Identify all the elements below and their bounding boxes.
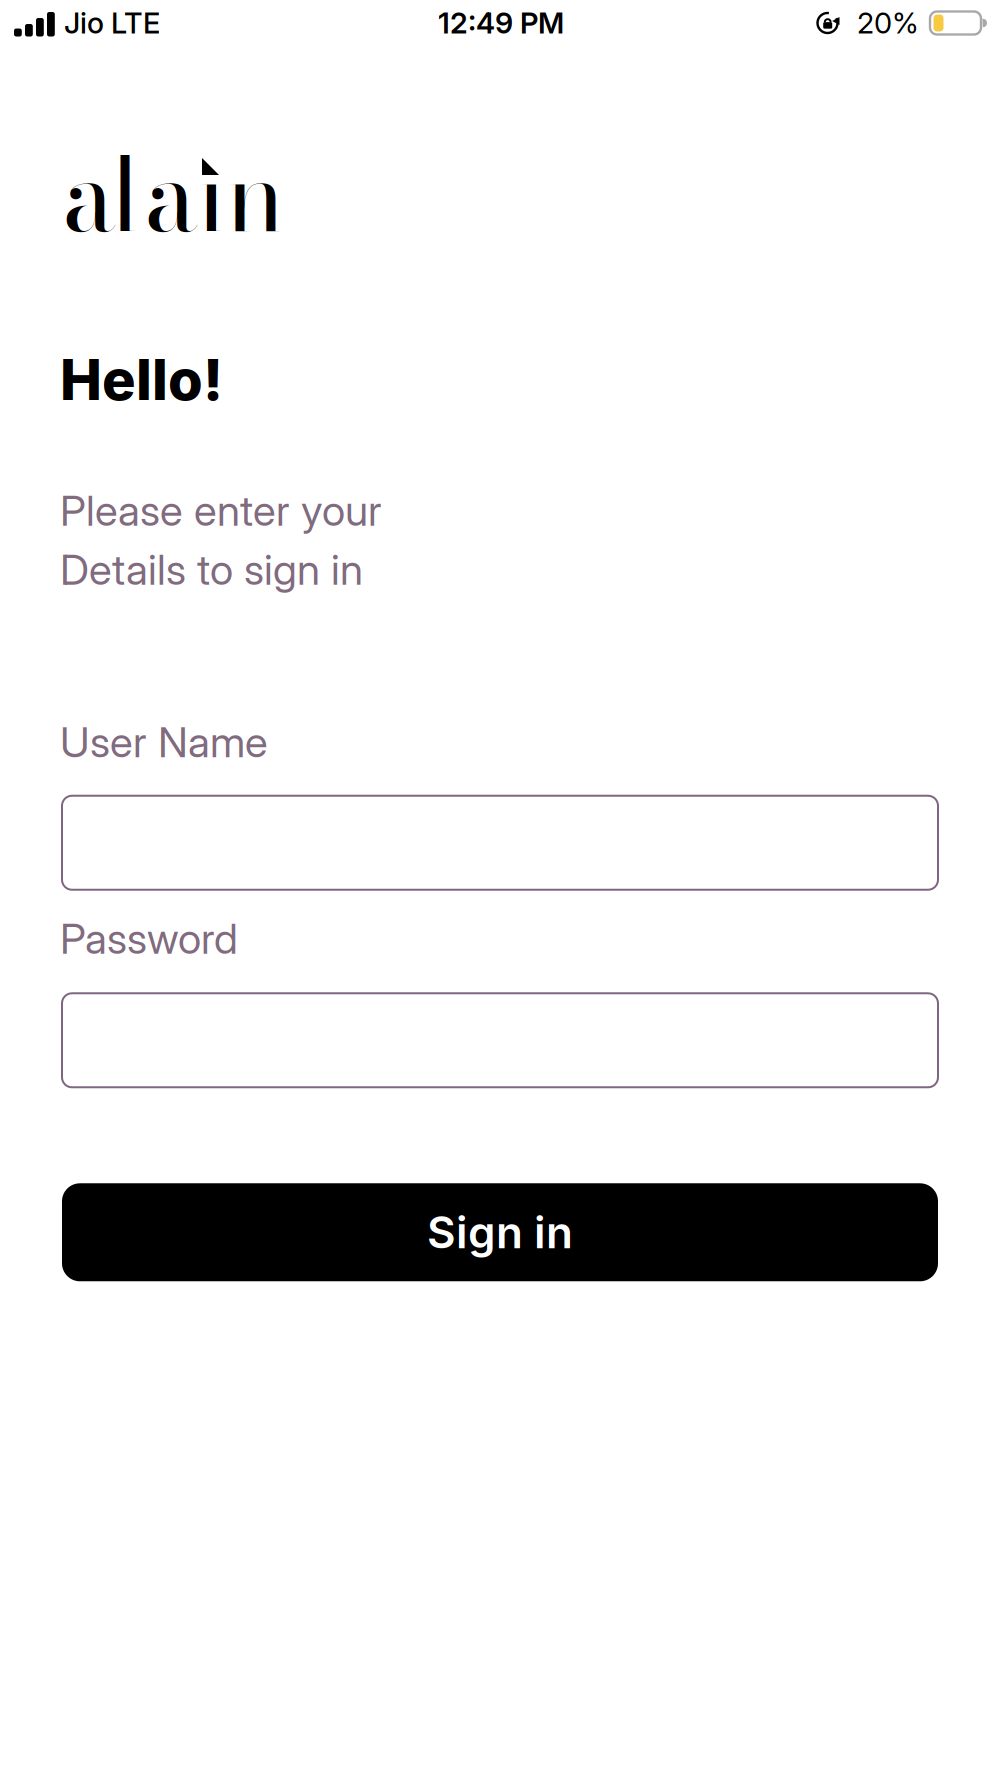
staticText: Please enter your Details to sign in [60,486,382,594]
staticText: Jio LTE [64,6,160,40]
staticText: Sign in [427,1206,573,1258]
staticText: 20% [857,6,919,40]
staticText: aın [144,117,285,271]
staticText: al [62,117,141,271]
staticText: User Name [60,717,268,767]
staticText: Password [60,914,238,963]
button[interactable]: User Name text field [62,796,938,890]
staticText: Hello! [60,346,223,413]
staticText: 12:49 PM [438,6,564,40]
button[interactable]: Password text field [62,993,938,1087]
button[interactable]: Sign in [62,1183,938,1281]
